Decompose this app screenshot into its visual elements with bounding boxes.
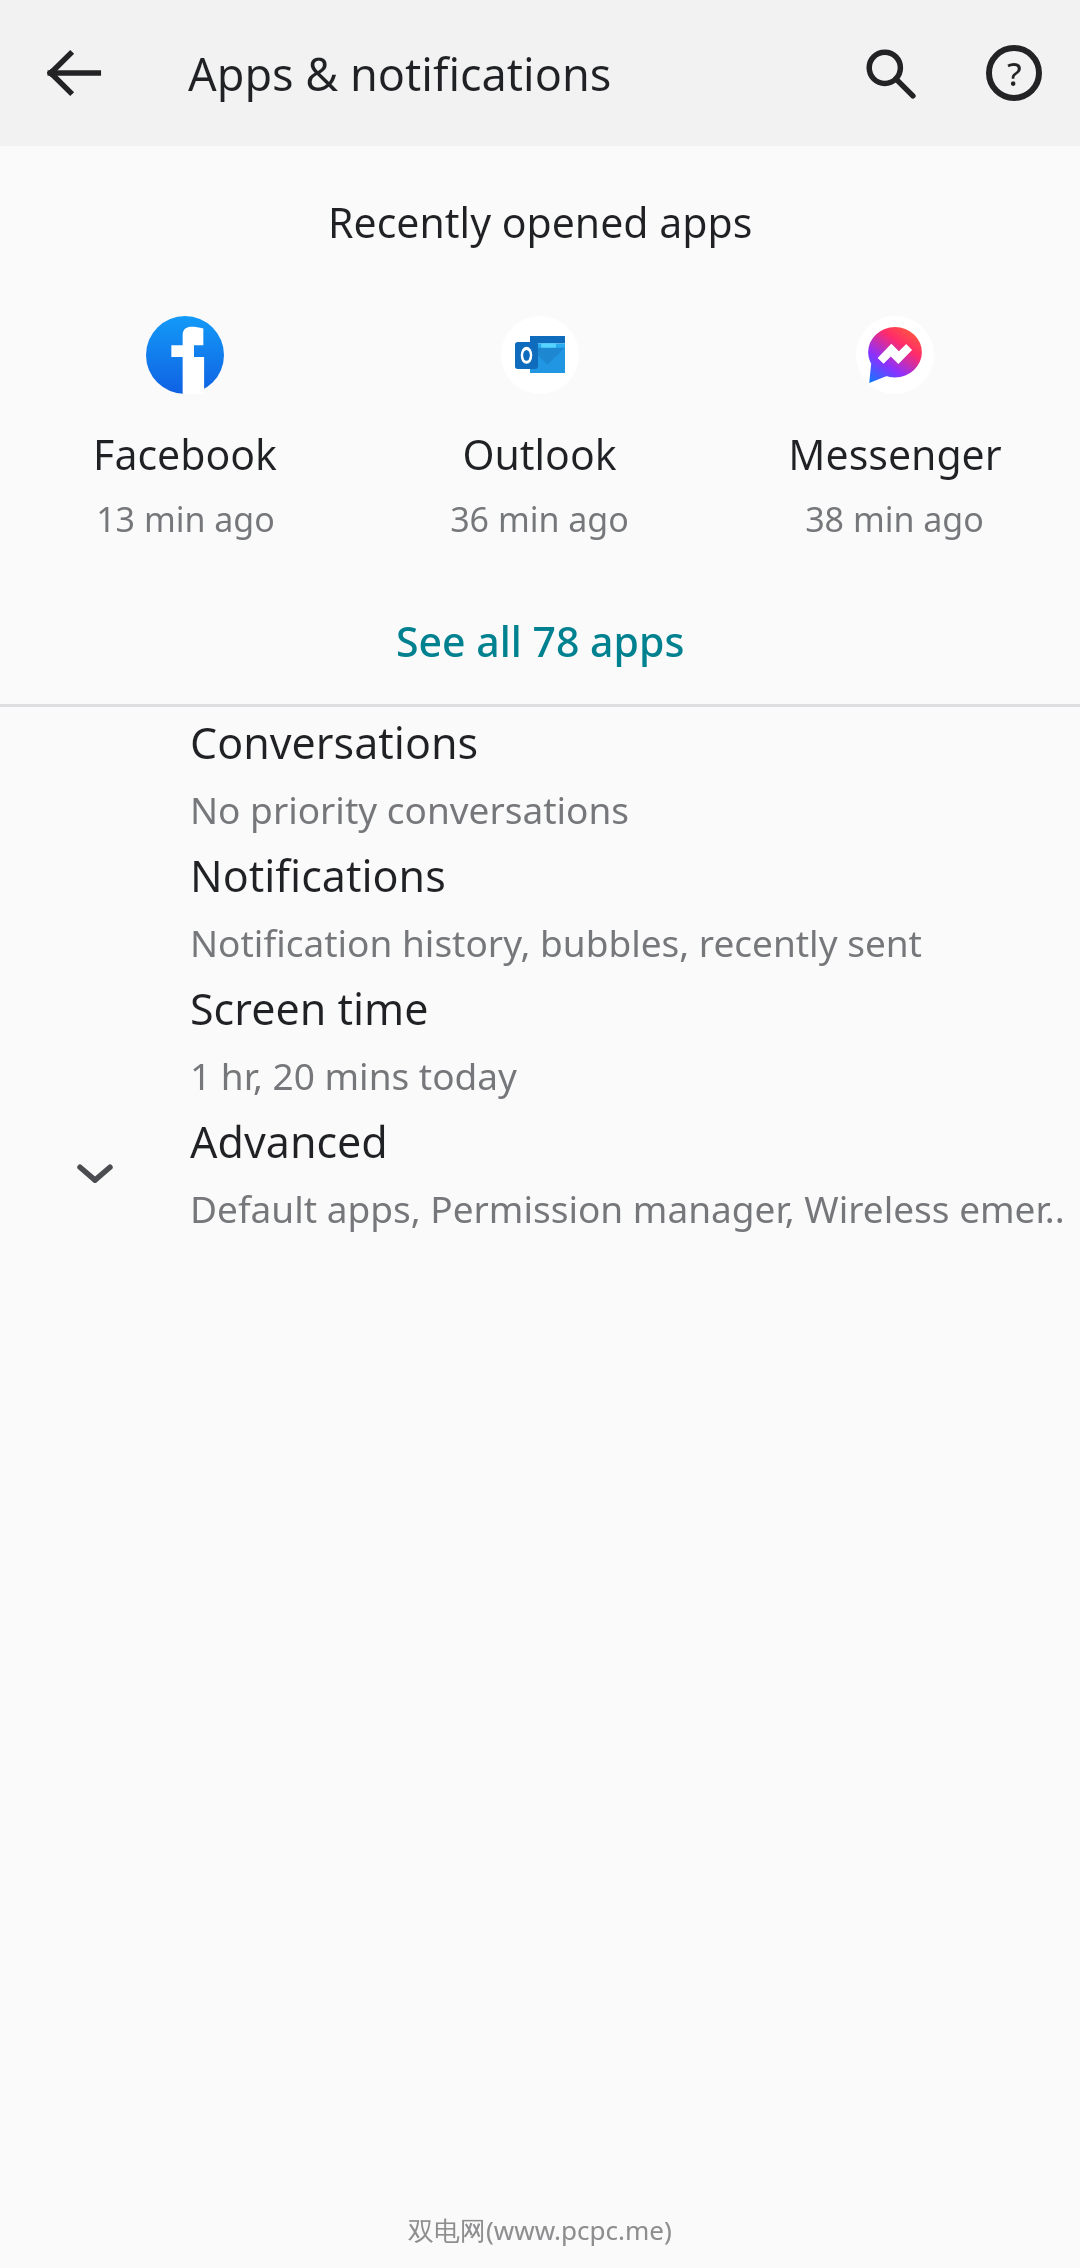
staticText: Messenger [788,426,1002,482]
button[interactable]: Back [26,25,122,121]
button[interactable]: See all 78 apps [0,594,1080,688]
staticText: 13 min ago [96,496,275,542]
button[interactable]: Expand Advanced [0,1106,1080,1239]
staticText: See all 78 apps [396,613,685,669]
staticText: 双电网(www.pcpc.me) [408,2212,672,2248]
button[interactable]: Facebook [8,316,362,542]
button[interactable]: Help [966,25,1062,121]
button[interactable]: Notifications [0,840,1080,973]
staticText: 1 hr, 20 mins today [190,1050,517,1100]
button[interactable]: Outlook [362,316,717,542]
staticText: Recently opened apps [328,194,753,250]
button[interactable]: Conversations [0,707,1080,840]
staticText: Notifications [190,846,446,905]
staticText: Default apps, Permission manager, Wirele… [190,1183,1065,1233]
staticText: Notification history, bubbles, recently … [190,917,922,967]
staticText: ? [1007,51,1022,96]
staticText: Outlook [462,426,617,482]
staticText: 38 min ago [805,496,984,542]
other: Expand Advanced [59,1137,131,1209]
button[interactable]: Messenger [717,316,1072,542]
button[interactable]: Search [842,25,938,121]
staticText: Advanced [190,1112,388,1171]
staticText: Conversations [190,713,479,772]
staticText: No priority conversations [190,784,630,834]
button[interactable]: Screen time [0,973,1080,1106]
staticText: Facebook [93,426,277,482]
staticText: Apps & notifications [188,43,612,104]
staticText: Screen time [190,979,429,1038]
staticText: 36 min ago [450,496,629,542]
